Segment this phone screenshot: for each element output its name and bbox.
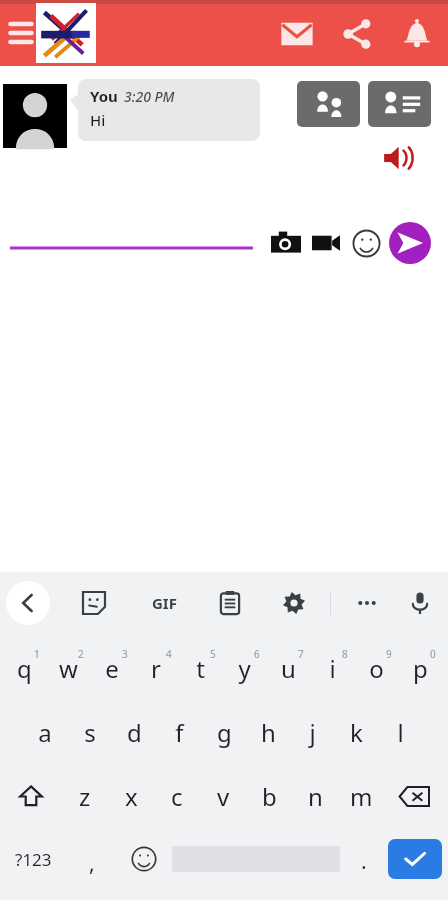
staticText: 5 <box>210 647 216 661</box>
staticText: 4 <box>166 647 172 661</box>
staticText: Hi <box>90 110 106 130</box>
staticText: , <box>89 849 95 878</box>
button[interactable]: y <box>222 636 266 700</box>
button[interactable]: f <box>157 700 202 764</box>
staticText: m <box>350 780 373 813</box>
button[interactable]: c <box>154 764 200 828</box>
button[interactable]: h <box>246 700 290 764</box>
button[interactable]: d <box>112 700 157 764</box>
staticText: n <box>308 780 323 813</box>
button[interactable]: Clipboard <box>210 583 250 623</box>
button[interactable]: More options <box>347 583 387 623</box>
button[interactable]: u <box>266 636 310 700</box>
staticText: You <box>90 86 118 106</box>
button[interactable]: b <box>246 764 292 828</box>
staticText: k <box>350 716 363 749</box>
button[interactable]: w <box>46 636 90 700</box>
button[interactable]: i <box>310 636 354 700</box>
button[interactable]: Video <box>308 225 344 261</box>
staticText: r <box>151 652 161 685</box>
button[interactable]: p <box>398 636 442 700</box>
button[interactable]: Avatar <box>3 84 67 148</box>
button[interactable]: v <box>200 764 246 828</box>
staticText: w <box>59 652 78 685</box>
button[interactable]: e <box>90 636 134 700</box>
staticText: 3 <box>122 647 128 661</box>
button[interactable]: You <box>78 79 260 141</box>
staticText: x <box>125 780 138 813</box>
staticText: . <box>361 847 367 876</box>
staticText: v <box>217 780 230 813</box>
staticText: t <box>196 652 205 685</box>
button[interactable]: Period <box>340 828 388 890</box>
button[interactable]: Share <box>336 13 378 55</box>
staticText: d <box>127 716 142 749</box>
staticText: 9 <box>386 647 392 661</box>
staticText: j <box>309 716 316 749</box>
button[interactable]: Backspace <box>384 764 444 828</box>
staticText: 7 <box>298 647 304 661</box>
staticText: 8 <box>342 647 348 661</box>
button[interactable]: t <box>178 636 222 700</box>
button[interactable]: m <box>338 764 384 828</box>
button[interactable]: Messages <box>276 13 318 55</box>
button[interactable]: o <box>354 636 398 700</box>
staticText: ?123 <box>15 848 52 871</box>
button[interactable]: Notifications <box>396 13 438 55</box>
button[interactable]: Comma <box>64 828 120 890</box>
button[interactable]: x <box>108 764 154 828</box>
staticText: 1 <box>34 647 40 661</box>
button[interactable]: Sound <box>378 139 416 177</box>
button[interactable]: GIF <box>142 581 186 625</box>
button[interactable]: j <box>290 700 334 764</box>
staticText: u <box>281 652 296 685</box>
button[interactable]: z <box>61 764 108 828</box>
button[interactable]: Stickers <box>74 583 114 623</box>
staticText: GIF <box>152 593 177 613</box>
staticText: s <box>84 716 96 749</box>
staticText: p <box>413 652 428 685</box>
staticText: y <box>238 652 251 685</box>
staticText: c <box>171 780 183 813</box>
button[interactable]: ?123 <box>2 828 64 890</box>
button[interactable]: l <box>378 700 422 764</box>
button[interactable]: Shift <box>0 764 61 828</box>
button[interactable]: Contact info <box>368 81 431 127</box>
button[interactable]: Send <box>388 221 432 265</box>
button[interactable]: s <box>67 700 112 764</box>
staticText: 0 <box>430 647 436 661</box>
staticText: a <box>38 716 52 749</box>
button[interactable]: a <box>22 700 67 764</box>
staticText: h <box>261 716 276 749</box>
button[interactable]: Back <box>6 581 50 625</box>
button[interactable]: r <box>134 636 178 700</box>
staticText: q <box>17 652 32 685</box>
button[interactable]: Settings <box>274 583 314 623</box>
staticText: g <box>217 716 232 749</box>
button[interactable]: Group members <box>297 81 360 127</box>
staticText: b <box>262 780 277 813</box>
staticText: 3:20 PM <box>124 87 175 106</box>
button[interactable]: Menu <box>4 16 38 50</box>
button[interactable]: Emoji <box>348 225 384 261</box>
button[interactable]: Logo <box>36 3 96 63</box>
button[interactable]: n <box>292 764 338 828</box>
button[interactable]: Enter <box>388 839 442 879</box>
button[interactable]: k <box>334 700 378 764</box>
staticText: i <box>329 652 336 685</box>
button[interactable]: Voice input <box>400 583 440 623</box>
staticText: f <box>175 716 184 749</box>
button[interactable]: Camera <box>268 225 304 261</box>
button[interactable]: Emoji <box>120 828 168 890</box>
button[interactable]: q <box>2 636 46 700</box>
staticText: 6 <box>254 647 260 661</box>
staticText: z <box>79 780 91 813</box>
staticText: 2 <box>78 647 84 661</box>
staticText: l <box>397 716 404 749</box>
staticText: e <box>105 652 119 685</box>
staticText: o <box>369 652 384 685</box>
button[interactable]: g <box>202 700 246 764</box>
